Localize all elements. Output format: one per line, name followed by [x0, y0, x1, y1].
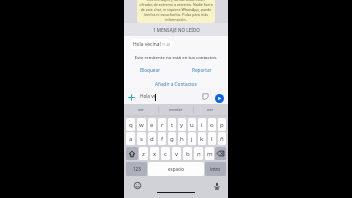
button[interactable]: q — [126, 118, 135, 131]
staticText: ver — [207, 107, 214, 113]
button[interactable]: v — [172, 147, 181, 160]
staticText: h — [180, 135, 184, 143]
button[interactable]: Borrar — [215, 147, 226, 160]
button[interactable]: Adjuntar — [125, 91, 137, 103]
button[interactable]: y — [178, 118, 186, 131]
button[interactable]: ser — [124, 104, 158, 116]
button[interactable]: Mayúsculas — [126, 147, 138, 160]
staticText: j — [191, 135, 193, 143]
staticText: d — [150, 135, 154, 143]
button[interactable]: c — [161, 147, 170, 160]
staticText: e — [150, 121, 154, 129]
button[interactable]: espacio — [148, 162, 204, 176]
staticText: Hola vecina! — [133, 41, 161, 48]
staticText: m — [207, 150, 213, 158]
staticText: u — [190, 121, 194, 129]
button[interactable]: ñ — [218, 132, 226, 145]
button[interactable]: x — [150, 147, 159, 160]
staticText: b — [186, 150, 190, 158]
staticText: 1 MENSAJE NO LEÍDO — [153, 27, 200, 33]
staticText: Bloquear — [140, 67, 161, 73]
button[interactable]: Dictado — [211, 180, 222, 191]
button[interactable]: e — [148, 118, 156, 131]
staticText: Este remitente no está en tus contactos. — [124, 54, 228, 60]
button[interactable]: d — [148, 132, 156, 145]
button[interactable]: vender — [158, 104, 193, 116]
staticText: k — [200, 135, 204, 143]
button[interactable]: j — [188, 132, 196, 145]
button[interactable]: Stickers — [202, 93, 209, 100]
button[interactable]: Los mensajes y las llamadas están cifrad… — [137, 0, 215, 23]
button[interactable]: m — [205, 147, 214, 160]
staticText: Reportar — [192, 67, 212, 73]
button[interactable]: b — [183, 147, 192, 160]
button[interactable]: z — [139, 147, 148, 160]
staticText: v — [175, 150, 179, 158]
button[interactable]: Bloquear — [124, 65, 176, 74]
staticText: ser — [138, 107, 145, 113]
button[interactable]: u — [188, 118, 196, 131]
staticText: g — [170, 135, 174, 143]
button[interactable]: ver — [193, 104, 228, 116]
staticText: w — [139, 121, 144, 129]
button[interactable]: Hola vecina! — [129, 39, 173, 49]
button[interactable]: f — [158, 132, 166, 145]
staticText: Los mensajes y las llamadas están cifrad… — [139, 0, 213, 22]
staticText: t — [171, 121, 174, 129]
staticText: Añadir a Contactos — [155, 81, 197, 87]
button[interactable]: h — [178, 132, 186, 145]
staticText: l — [211, 135, 213, 143]
staticText: intro — [210, 166, 221, 172]
staticText: 123 — [133, 166, 141, 172]
button[interactable]: n — [194, 147, 203, 160]
button[interactable]: Emoji — [132, 180, 143, 191]
button[interactable]: w — [137, 118, 146, 131]
staticText: x — [153, 150, 157, 158]
button[interactable]: a — [126, 132, 135, 145]
staticText: vender — [169, 107, 183, 113]
staticText: 11:48 — [162, 43, 171, 47]
button[interactable]: g — [168, 132, 176, 145]
staticText: z — [142, 150, 145, 158]
staticText: r — [161, 121, 164, 129]
staticText: q — [129, 121, 133, 129]
staticText: s — [140, 135, 143, 143]
button[interactable]: o — [208, 118, 216, 131]
button[interactable]: s — [137, 132, 146, 145]
button[interactable]: Reportar — [176, 65, 228, 74]
button[interactable]: r — [158, 118, 166, 131]
staticText: espacio — [168, 166, 185, 172]
button[interactable]: t — [168, 118, 176, 131]
button[interactable]: l — [208, 132, 216, 145]
button[interactable]: p — [218, 118, 226, 131]
staticText: n — [197, 150, 201, 158]
staticText: f — [161, 135, 164, 143]
staticText: c — [164, 150, 167, 158]
button[interactable]: intro — [205, 162, 226, 176]
button[interactable]: i — [198, 118, 206, 131]
button[interactable]: k — [198, 132, 206, 145]
button[interactable]: Añadir a Contactos — [124, 79, 228, 88]
staticText: ñ — [220, 135, 224, 143]
button[interactable]: 123 — [126, 162, 147, 176]
staticText: i — [201, 121, 203, 129]
staticText: Hola ve — [140, 93, 157, 99]
staticText: p — [220, 121, 224, 129]
staticText: a — [129, 135, 133, 143]
button[interactable]: Enviar — [215, 94, 224, 103]
staticText: o — [210, 121, 214, 129]
staticText: y — [180, 121, 184, 129]
